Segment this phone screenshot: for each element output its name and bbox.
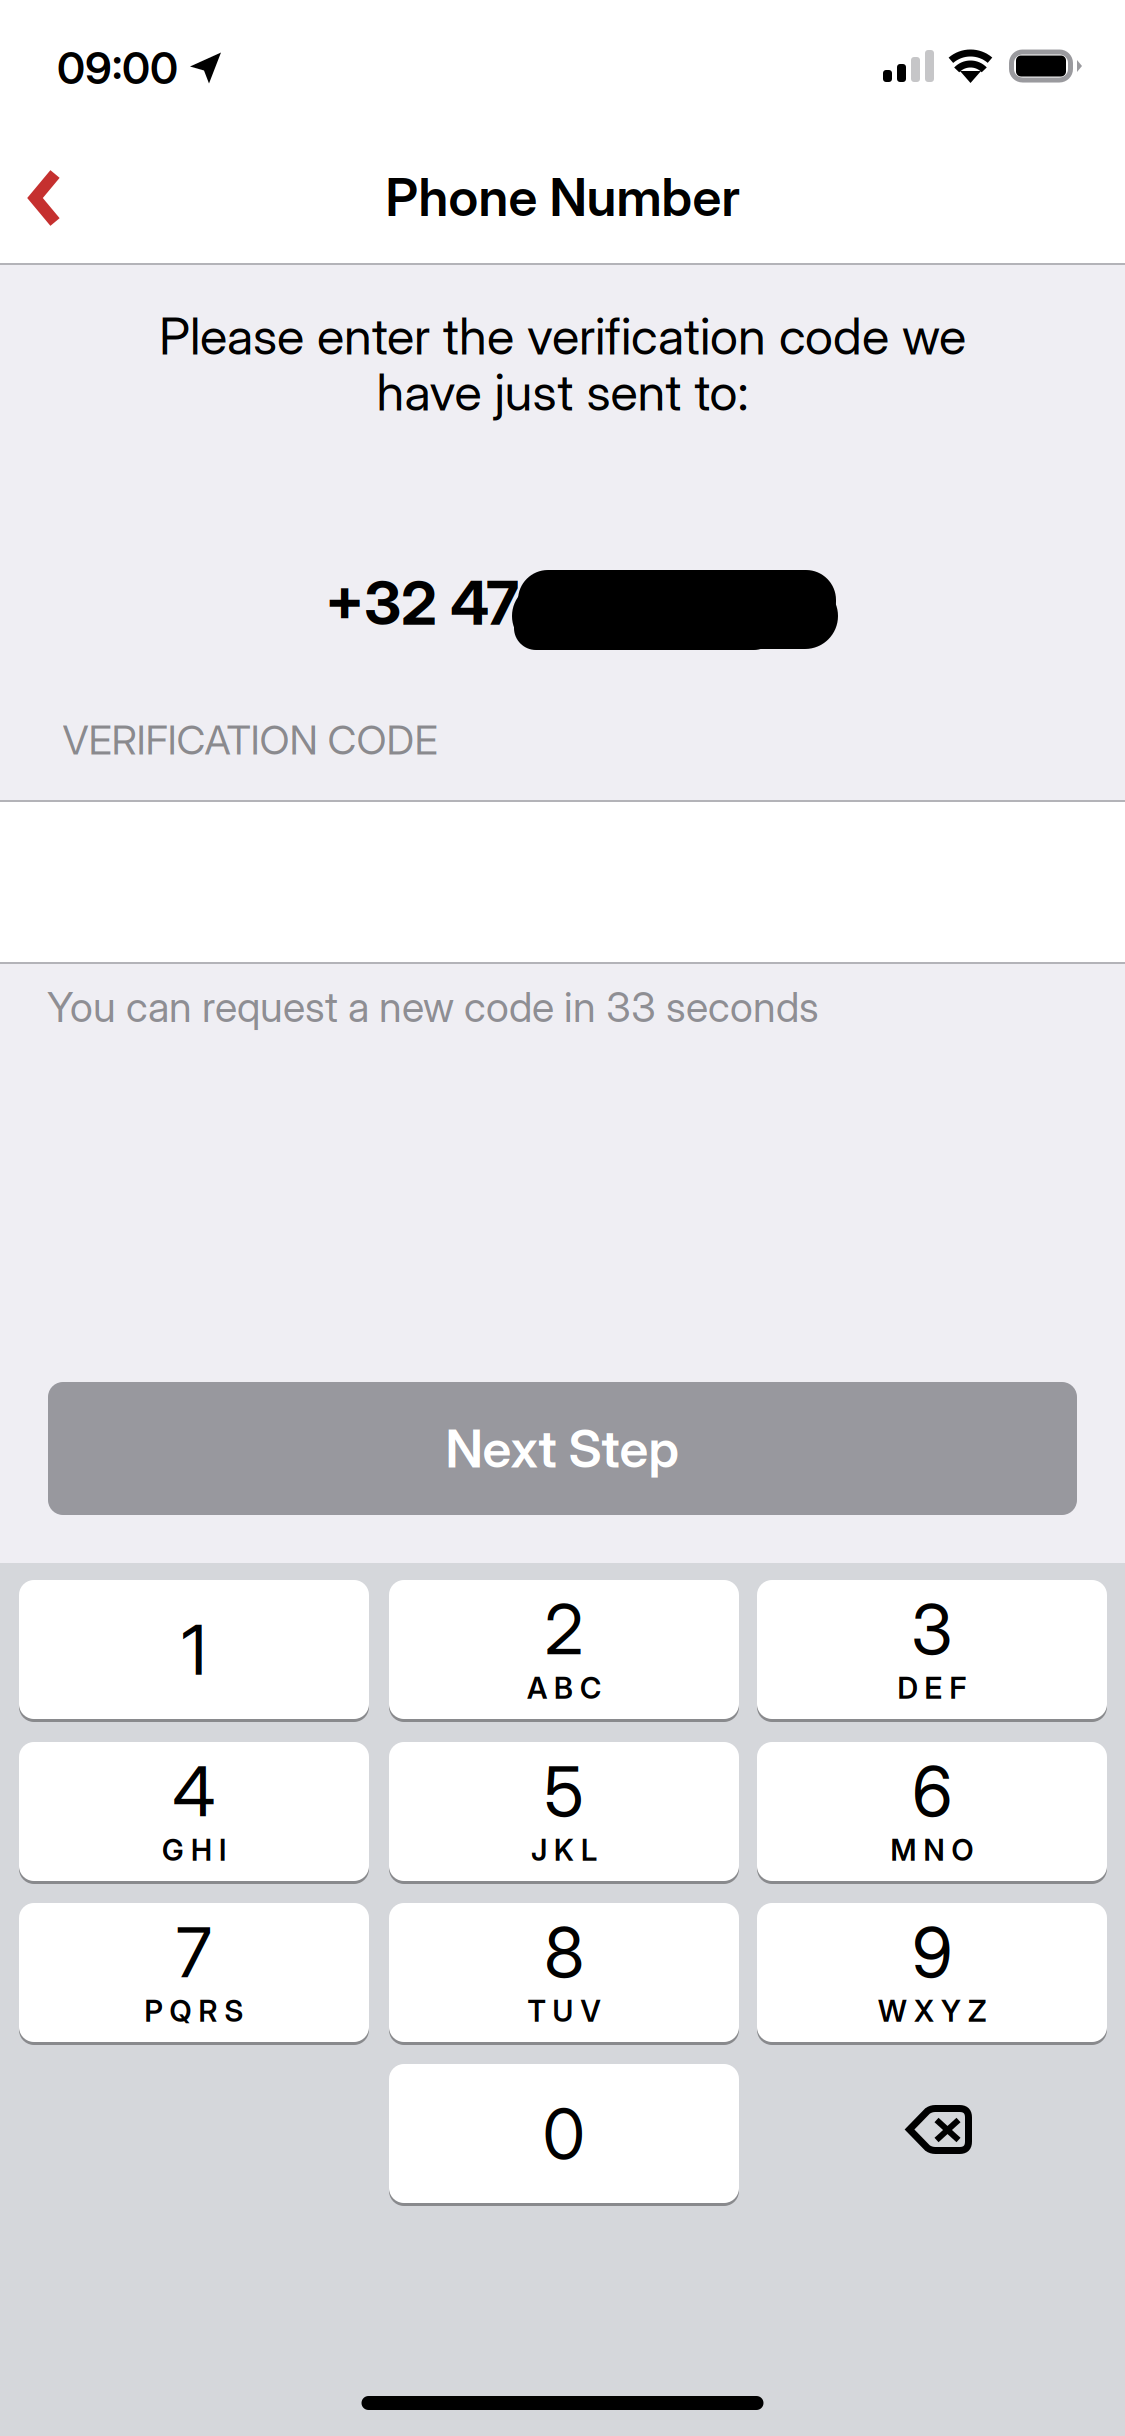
staticText: Next Step bbox=[445, 1417, 679, 1480]
staticText: D E F bbox=[897, 1670, 966, 1706]
staticText: 3 bbox=[911, 1587, 953, 1671]
staticText: 6 bbox=[912, 1749, 952, 1833]
staticText: Please enter the verification code we bbox=[159, 305, 966, 367]
button[interactable]: 1 bbox=[19, 1580, 369, 1719]
button[interactable]: 0 bbox=[389, 2064, 739, 2203]
staticText: 09:00 bbox=[57, 41, 178, 95]
button[interactable]: Delete bbox=[757, 2064, 1107, 2203]
staticText: have just sent to: bbox=[376, 361, 748, 423]
staticText: 7 bbox=[176, 1910, 212, 1994]
staticText: Phone Number bbox=[385, 165, 740, 228]
button[interactable]: 2 bbox=[389, 1580, 739, 1719]
staticText: 1 bbox=[181, 1608, 206, 1691]
staticText: 2 bbox=[544, 1587, 583, 1671]
staticText: A B C bbox=[527, 1670, 601, 1706]
staticText: 5 bbox=[544, 1749, 584, 1833]
button[interactable]: 5 bbox=[389, 1742, 739, 1881]
button[interactable]: Back bbox=[0, 138, 105, 258]
button[interactable]: 4 bbox=[19, 1742, 369, 1881]
staticText: J K L bbox=[531, 1832, 597, 1868]
staticText: G H I bbox=[162, 1832, 226, 1868]
staticText: You can request a new code in 33 seconds bbox=[47, 982, 819, 1032]
staticText: VERIFICATION CODE bbox=[62, 716, 437, 764]
button[interactable]: Next Step bbox=[48, 1382, 1077, 1515]
staticText: 9 bbox=[912, 1910, 952, 1994]
staticText: 4 bbox=[172, 1749, 215, 1833]
button[interactable]: 7 bbox=[19, 1903, 369, 2042]
button[interactable]: 9 bbox=[757, 1903, 1107, 2042]
staticText: W X Y Z bbox=[878, 1993, 986, 2029]
button[interactable]: 6 bbox=[757, 1742, 1107, 1881]
staticText: 8 bbox=[544, 1910, 584, 1994]
button[interactable]: 8 bbox=[389, 1903, 739, 2042]
staticText: +32 47 bbox=[325, 567, 519, 639]
button[interactable]: 3 bbox=[757, 1580, 1107, 1719]
staticText: T U V bbox=[527, 1993, 600, 2029]
staticText: P Q R S bbox=[144, 1993, 243, 2029]
staticText: 0 bbox=[542, 2092, 585, 2175]
staticText: M N O bbox=[890, 1832, 973, 1868]
